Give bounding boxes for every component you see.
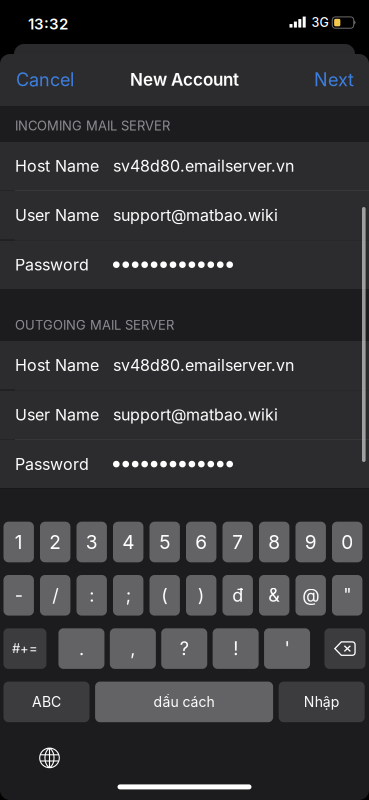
button[interactable]: Password <box>0 240 369 289</box>
staticText: " <box>343 584 351 606</box>
button[interactable]: Host Name <box>0 142 369 190</box>
staticText: 6 <box>195 530 207 553</box>
button[interactable]: Password <box>0 440 369 488</box>
staticText: Password <box>15 454 89 474</box>
button[interactable]: dấu cách <box>95 682 273 722</box>
staticText: ' <box>284 638 289 659</box>
staticText: 5 <box>159 530 170 553</box>
button[interactable]: 2 <box>40 522 70 562</box>
button[interactable]: Nhập <box>279 682 365 722</box>
button[interactable]: & <box>259 575 289 616</box>
staticText: ABC <box>32 693 61 710</box>
button[interactable]: 8 <box>259 522 289 562</box>
button[interactable]: 0 <box>332 522 362 562</box>
button[interactable]: " <box>332 575 362 616</box>
staticText: ? <box>180 638 189 659</box>
staticText: / <box>52 584 58 606</box>
button[interactable]: 4 <box>113 522 143 562</box>
button[interactable]: User Name <box>0 191 369 240</box>
staticText: ! <box>233 638 238 659</box>
staticText: 13:32 <box>28 15 68 33</box>
button[interactable]: , <box>110 628 156 669</box>
staticText: 8 <box>268 530 280 553</box>
button[interactable]: / <box>40 575 70 616</box>
button[interactable]: Host Name <box>0 341 369 390</box>
staticText: sv48d80.emailserver.vn <box>113 156 294 176</box>
staticText: INCOMING MAIL SERVER <box>15 118 170 134</box>
button[interactable]: 7 <box>222 522 253 562</box>
staticText: Password <box>15 255 89 274</box>
staticText: 7 <box>232 530 243 553</box>
staticText: 4 <box>122 530 134 553</box>
staticText: 3G <box>311 15 328 30</box>
staticText: OUTGOING MAIL SERVER <box>15 317 174 333</box>
staticText: support@matbao.wiki <box>113 405 278 424</box>
button[interactable]: đ <box>222 575 253 616</box>
staticText: 1 <box>15 530 23 553</box>
button[interactable]: 3 <box>76 522 107 562</box>
staticText: Cancel <box>16 69 74 90</box>
button[interactable]: @ <box>295 575 326 616</box>
button[interactable]: ! <box>213 628 259 669</box>
button[interactable]: : <box>76 575 107 616</box>
staticText: 0 <box>341 530 353 553</box>
button[interactable]: Switch keyboard <box>29 737 70 778</box>
staticText: ( <box>161 584 168 606</box>
staticText: #+= <box>12 641 38 656</box>
staticText: - <box>15 584 23 606</box>
button[interactable]: User Name <box>0 390 369 439</box>
button[interactable]: #+= <box>3 628 46 669</box>
staticText: 2 <box>49 530 61 553</box>
button[interactable]: Delete <box>324 628 365 669</box>
staticText: 3 <box>86 530 98 553</box>
staticText: 9 <box>305 530 317 553</box>
staticText: : <box>89 584 94 606</box>
staticText: & <box>268 584 280 606</box>
button[interactable]: 9 <box>295 522 326 562</box>
button[interactable]: Next <box>299 53 369 107</box>
staticText: Host Name <box>15 356 99 375</box>
staticText: dấu cách <box>154 693 215 710</box>
staticText: đ <box>232 584 243 606</box>
button[interactable]: ) <box>186 575 216 616</box>
button[interactable]: ' <box>264 628 310 669</box>
button[interactable]: 1 <box>3 522 34 562</box>
button[interactable]: Cancel <box>0 53 90 107</box>
staticText: @ <box>302 584 319 606</box>
staticText: Host Name <box>15 156 99 176</box>
button[interactable]: 6 <box>186 522 216 562</box>
staticText: . <box>79 638 84 659</box>
staticText: Nhập <box>304 693 340 710</box>
button[interactable]: - <box>3 575 34 616</box>
button[interactable]: ? <box>161 628 207 669</box>
staticText: ) <box>198 584 205 606</box>
button[interactable]: ( <box>149 575 180 616</box>
staticText: User Name <box>15 206 99 225</box>
staticText: support@matbao.wiki <box>113 206 278 225</box>
button[interactable]: . <box>58 628 104 669</box>
staticText: sv48d80.emailserver.vn <box>113 356 294 375</box>
staticText: , <box>130 638 135 659</box>
button[interactable]: ABC <box>3 682 89 722</box>
staticText: ; <box>126 584 131 606</box>
staticText: User Name <box>15 405 99 424</box>
staticText: Next <box>314 69 354 90</box>
button[interactable]: ; <box>113 575 143 616</box>
staticText: New Account <box>130 69 239 90</box>
button[interactable]: 5 <box>149 522 180 562</box>
